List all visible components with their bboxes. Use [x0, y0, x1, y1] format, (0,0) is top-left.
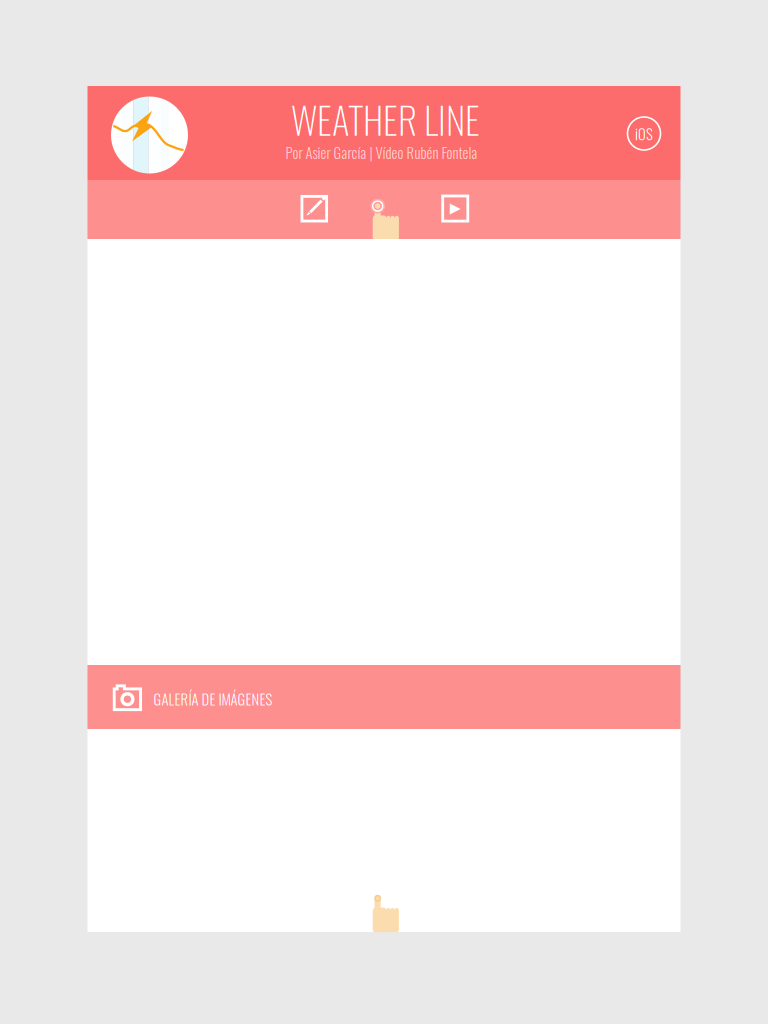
button[interactable]: Play	[441, 195, 469, 222]
button[interactable]: Edit	[301, 195, 328, 222]
staticText: WEATHER LINE	[291, 91, 480, 147]
button[interactable]: GALERÍA DE IMÁGENES	[87, 665, 680, 729]
staticText: iOS	[635, 123, 653, 144]
button[interactable]: iOS	[626, 115, 662, 151]
staticText: Por Asier García | Vídeo Rubén Fontela	[285, 141, 477, 163]
staticText: GALERÍA DE IMÁGENES	[153, 688, 272, 710]
